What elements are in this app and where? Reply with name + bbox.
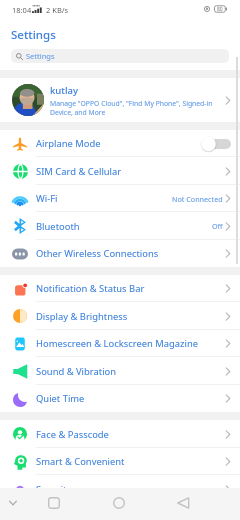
staticText: Off: [212, 221, 223, 231]
staticText: Settings: [26, 51, 55, 61]
staticText: Face & Passcode: [36, 428, 109, 441]
staticText: Bluetooth: [36, 220, 80, 233]
staticText: Wi-Fi: [36, 192, 58, 205]
staticText: Settings: [11, 27, 56, 43]
staticText: 18:04: [12, 5, 32, 15]
button[interactable]: Notification & Status Bar: [0, 275, 240, 302]
staticText: kutlay: [50, 84, 78, 97]
staticText: Smart & Convenient: [36, 455, 125, 468]
button[interactable]: SIM Card & Cellular: [0, 157, 240, 185]
staticText: Sound & Vibration: [36, 365, 117, 378]
button[interactable]: Smart & Convenient: [0, 448, 240, 475]
button[interactable]: Face & Passcode: [0, 420, 240, 448]
button[interactable]: Back: [167, 487, 199, 519]
staticText: Notification & Status Bar: [36, 282, 145, 295]
button[interactable]: Quiet Time: [0, 385, 240, 412]
button[interactable]: Wi-Fi: [0, 185, 240, 212]
button[interactable]: Recents: [38, 487, 70, 519]
staticText: Other Wireless Connections: [36, 247, 159, 260]
button[interactable]: Hide keyboard: [1, 487, 25, 519]
button[interactable]: Settings: [11, 49, 229, 63]
button[interactable]: kutlay: [0, 78, 240, 122]
button[interactable]: Sound & Vibration: [0, 357, 240, 385]
staticText: Not Connected: [172, 194, 223, 204]
button[interactable]: Other Wireless Connections: [0, 240, 240, 267]
button[interactable]: Bluetooth: [0, 212, 240, 240]
staticText: 80: [217, 6, 223, 13]
staticText: Manage "OPPO Cloud", "Find My Phone", Si…: [50, 99, 213, 117]
button[interactable]: Display & Brightness: [0, 302, 240, 330]
staticText: Homescreen & Lockscreen Magazine: [36, 337, 198, 350]
staticText: Display & Brightness: [36, 310, 128, 323]
button[interactable]: Airplane Mode: [0, 130, 240, 157]
staticText: Airplane Mode: [36, 137, 101, 150]
staticText: SIM Card & Cellular: [36, 165, 122, 178]
button[interactable]: Homescreen & Lockscreen Magazine: [0, 330, 240, 357]
button[interactable]: Home: [103, 487, 135, 519]
staticText: Security: [36, 483, 72, 496]
button[interactable]: Security: [0, 475, 240, 503]
staticText: 2 KB/s: [46, 5, 69, 15]
button[interactable]: [201, 136, 231, 152]
staticText: Quiet Time: [36, 392, 85, 405]
